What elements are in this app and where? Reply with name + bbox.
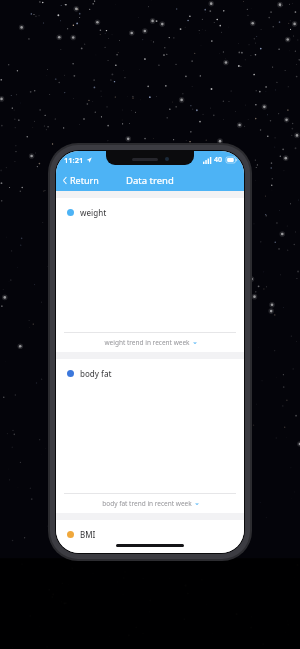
staticText: weight trend in recent week	[104, 338, 190, 347]
staticText: Return	[70, 174, 99, 186]
button[interactable]: Return	[56, 171, 105, 189]
button[interactable]: body fat	[56, 359, 244, 513]
staticText: 11:21	[64, 155, 84, 165]
button[interactable]: weight	[56, 198, 244, 352]
staticText: body fat	[80, 368, 112, 379]
staticText: 40	[214, 155, 223, 165]
staticText: body fat trend in recent week	[102, 499, 192, 508]
staticText: weight	[80, 207, 107, 218]
staticText: BMI	[80, 529, 96, 540]
staticText: Data trend	[126, 174, 174, 187]
